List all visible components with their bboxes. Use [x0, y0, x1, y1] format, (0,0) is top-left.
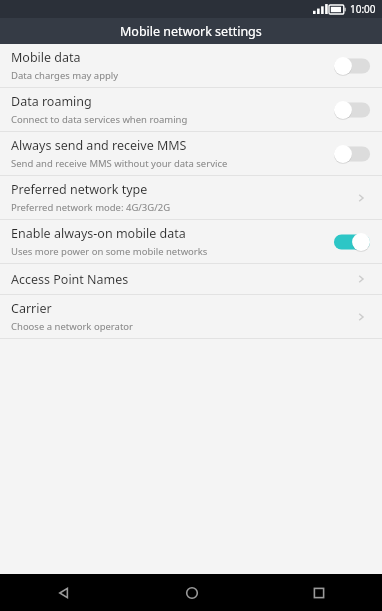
staticText: Enable always-on mobile data: [11, 225, 186, 242]
button[interactable]: Data roaming: [0, 88, 382, 131]
staticText: Send and receive MMS without your data s…: [11, 157, 228, 170]
button[interactable]: Recent apps: [255, 574, 382, 611]
button[interactable]: Access Point Names: [0, 264, 382, 294]
button[interactable]: Toggle off: [333, 100, 371, 120]
staticText: Preferred network type: [11, 181, 148, 198]
button[interactable]: Always send and receive MMS: [0, 132, 382, 175]
button[interactable]: Toggle off: [333, 144, 371, 164]
button[interactable]: Toggle off: [333, 56, 371, 76]
staticText: Data charges may apply: [11, 69, 119, 82]
button[interactable]: Carrier: [0, 295, 382, 338]
staticText: Always send and receive MMS: [11, 137, 187, 154]
staticText: Mobile network settings: [120, 23, 262, 40]
button[interactable]: Back: [0, 574, 128, 611]
staticText: Mobile data: [11, 49, 81, 66]
staticText: Choose a network operator: [11, 320, 133, 333]
staticText: Connect to data services when roaming: [11, 113, 188, 126]
button[interactable]: Preferred network type: [0, 176, 382, 219]
staticText: Preferred network mode: 4G/3G/2G: [11, 201, 171, 214]
button[interactable]: Toggle on: [333, 232, 371, 252]
staticText: Carrier: [11, 300, 52, 317]
staticText: Data roaming: [11, 93, 92, 110]
staticText: 10:00: [350, 2, 376, 16]
staticText: Access Point Names: [11, 271, 129, 288]
button[interactable]: Home: [128, 574, 255, 611]
button[interactable]: Enable always-on mobile data: [0, 220, 382, 263]
staticText: Uses more power on some mobile networks: [11, 245, 208, 258]
button[interactable]: Mobile data: [0, 44, 382, 87]
